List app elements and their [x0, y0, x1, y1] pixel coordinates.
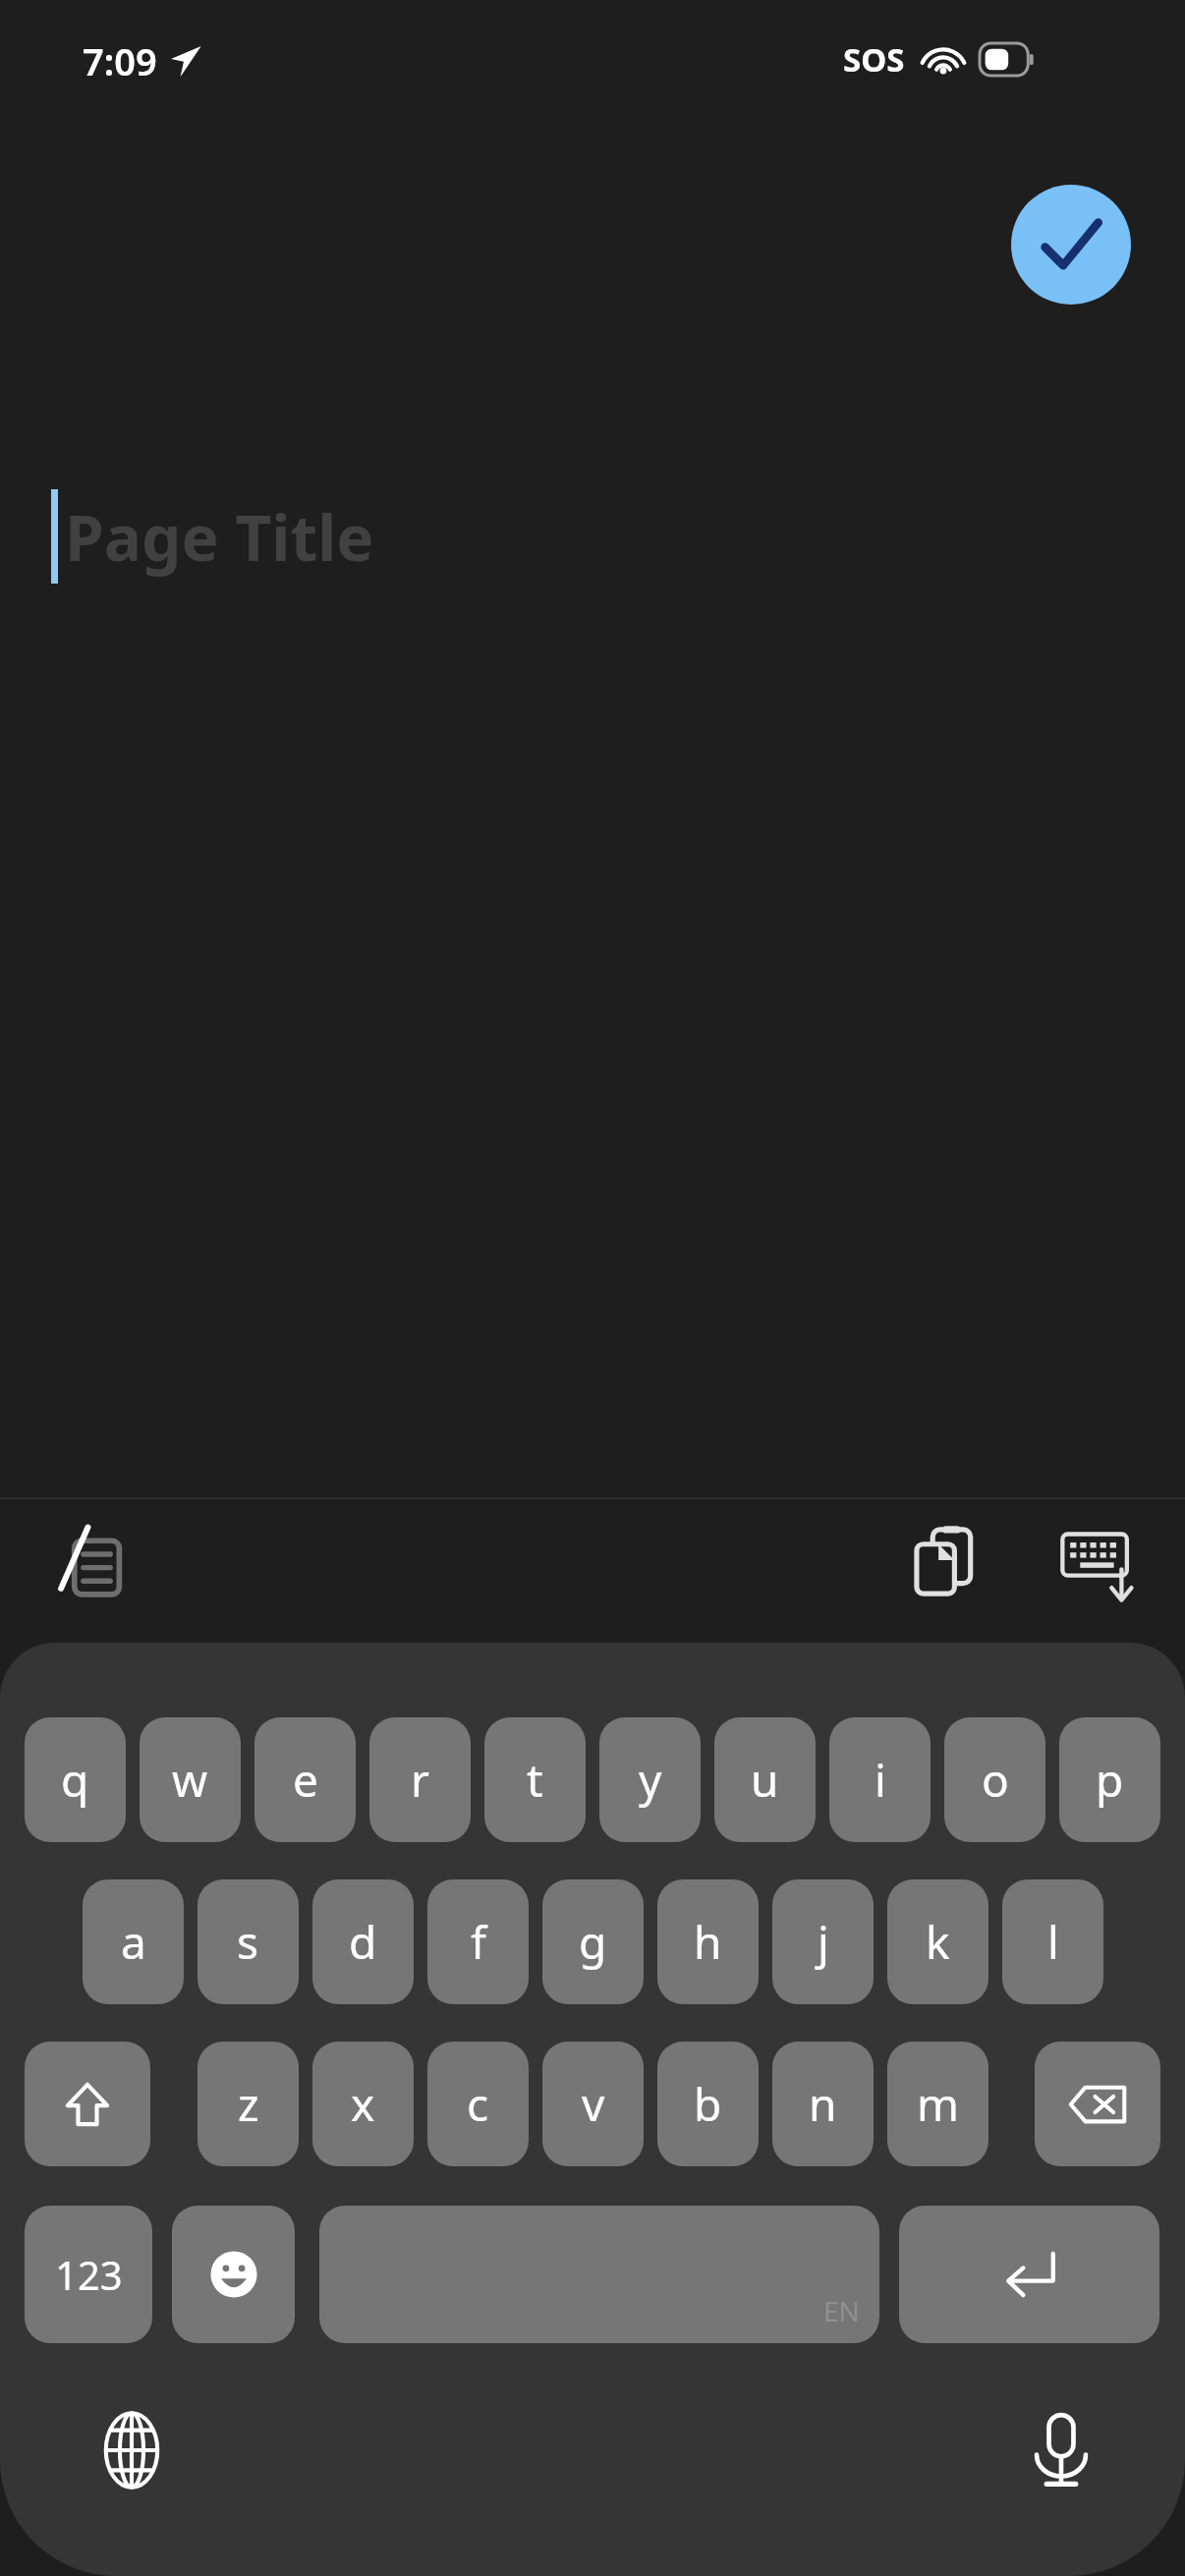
button[interactable]: n — [772, 2042, 874, 2166]
button[interactable]: t — [484, 1717, 586, 1842]
button[interactable]: c — [427, 2042, 529, 2166]
button[interactable]: Hide keyboard — [1044, 1505, 1154, 1615]
button[interactable]: Formatting — [37, 1505, 147, 1615]
staticText: 123 — [55, 2248, 123, 2301]
button[interactable]: Backspace — [1035, 2042, 1160, 2166]
button[interactable]: 123 — [25, 2206, 152, 2343]
staticText: j — [818, 1911, 829, 1973]
button[interactable]: d — [312, 1879, 414, 2004]
staticText: c — [467, 2073, 489, 2135]
button[interactable]: y — [599, 1717, 701, 1842]
button[interactable]: h — [657, 1879, 759, 2004]
staticText: 7:09 — [83, 35, 157, 86]
button[interactable]: r — [369, 1717, 471, 1842]
button[interactable]: k — [887, 1879, 988, 2004]
staticText: z — [238, 2073, 259, 2135]
staticText: t — [527, 1749, 543, 1811]
staticText: b — [694, 2073, 722, 2135]
button[interactable]: f — [427, 1879, 529, 2004]
button[interactable]: m — [887, 2042, 988, 2166]
staticText: e — [293, 1749, 318, 1811]
button[interactable]: Done — [1011, 185, 1131, 305]
button[interactable]: e — [254, 1717, 356, 1842]
staticText: SOS — [843, 37, 905, 82]
staticText: a — [121, 1911, 146, 1973]
button[interactable]: q — [25, 1717, 126, 1842]
button[interactable]: x — [312, 2042, 414, 2166]
staticText: p — [1096, 1749, 1124, 1811]
button[interactable]: Emoji — [172, 2206, 295, 2343]
button[interactable]: l — [1002, 1879, 1103, 2004]
button[interactable]: Shift — [25, 2042, 150, 2166]
button[interactable]: Page Title — [0, 477, 1185, 595]
button[interactable]: Voice input — [1006, 2395, 1116, 2505]
staticText: s — [237, 1911, 259, 1973]
staticText: q — [61, 1749, 89, 1811]
staticText: u — [751, 1749, 779, 1811]
staticText: k — [926, 1911, 950, 1973]
staticText: v — [582, 2073, 605, 2135]
button[interactable]: Change language — [77, 2395, 187, 2505]
button[interactable]: j — [772, 1879, 874, 2004]
staticText: x — [351, 2073, 375, 2135]
button[interactable]: u — [714, 1717, 816, 1842]
staticText: d — [349, 1911, 377, 1973]
button[interactable]: w — [140, 1717, 241, 1842]
button[interactable]: a — [83, 1879, 184, 2004]
staticText: w — [172, 1749, 208, 1811]
staticText: m — [917, 2073, 960, 2135]
staticText: g — [579, 1911, 607, 1973]
button[interactable]: z — [197, 2042, 299, 2166]
button[interactable]: p — [1059, 1717, 1160, 1842]
button[interactable]: s — [197, 1879, 299, 2004]
staticText: i — [875, 1749, 886, 1811]
button[interactable]: i — [829, 1717, 931, 1842]
button[interactable]: Space — [319, 2206, 879, 2343]
staticText: f — [471, 1911, 486, 1973]
button[interactable]: o — [944, 1717, 1045, 1842]
staticText: h — [694, 1911, 722, 1973]
button[interactable]: Paste — [892, 1505, 1002, 1615]
staticText: EN — [823, 2292, 860, 2329]
staticText: o — [982, 1749, 1009, 1811]
button[interactable]: v — [542, 2042, 644, 2166]
staticText: Page Title — [65, 494, 374, 580]
staticText: n — [809, 2073, 837, 2135]
button[interactable]: g — [542, 1879, 644, 2004]
staticText: y — [639, 1749, 662, 1811]
button[interactable]: b — [657, 2042, 759, 2166]
staticText: r — [411, 1749, 429, 1811]
button[interactable]: Enter — [899, 2206, 1159, 2343]
staticText: l — [1047, 1911, 1059, 1973]
